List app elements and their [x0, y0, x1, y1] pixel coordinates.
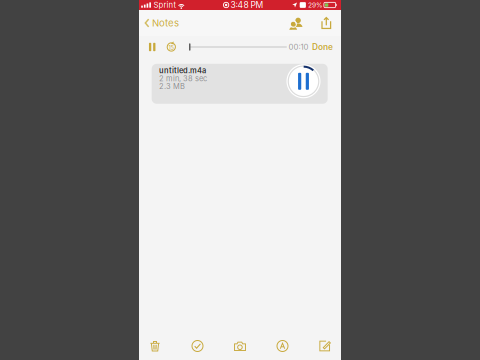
button[interactable]: Compose: [312, 334, 338, 358]
button[interactable]: Done: [308, 36, 333, 58]
button[interactable]: Checklist: [184, 334, 210, 358]
button[interactable]: Share: [315, 10, 337, 36]
staticText: 29%: [308, 1, 323, 9]
button[interactable]: Camera: [227, 334, 253, 358]
staticText: 00:10: [288, 42, 308, 52]
staticText: 2 min, 38 sec: [159, 74, 207, 83]
button[interactable]: Pause recording: [286, 64, 320, 98]
button[interactable]: Delete: [142, 334, 168, 358]
staticText: untitled.m4a: [159, 66, 206, 75]
staticText: Done: [312, 42, 333, 52]
button[interactable]: Skip back 15 seconds: [164, 36, 178, 58]
button[interactable]: Notes: [139, 10, 185, 36]
button[interactable]: Add People: [286, 10, 308, 36]
button[interactable]: Pause: [144, 36, 160, 58]
staticText: 2.3 MB: [159, 82, 185, 91]
button[interactable]: Markup: [269, 334, 295, 358]
staticText: 3:48 PM: [231, 0, 264, 10]
staticText: 15: [168, 44, 173, 51]
staticText: Sprint: [153, 0, 176, 10]
staticText: Notes: [152, 17, 179, 29]
